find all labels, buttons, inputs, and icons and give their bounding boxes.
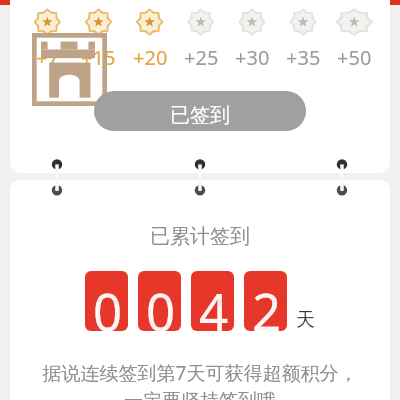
button[interactable]: 已签到: [94, 91, 306, 131]
staticText: +7: [36, 44, 59, 71]
staticText: 2: [252, 276, 282, 331]
staticText: 已签到: [170, 103, 230, 128]
staticText: 据说连续签到第7天可获得超额积分， 一定要坚持签到哦: [20, 360, 380, 400]
staticText: +35: [286, 44, 321, 71]
staticText: 0: [146, 276, 176, 331]
staticText: +20: [133, 44, 168, 71]
staticText: +30: [235, 44, 270, 71]
staticText: 4: [199, 276, 229, 331]
other: Sign-in reward image: [32, 33, 107, 106]
staticText: 已累计签到: [150, 224, 250, 249]
staticText: +15: [81, 44, 116, 71]
staticText: 0: [93, 276, 123, 331]
staticText: 天: [296, 308, 315, 332]
staticText: +50: [337, 44, 372, 71]
staticText: +25: [184, 44, 219, 71]
